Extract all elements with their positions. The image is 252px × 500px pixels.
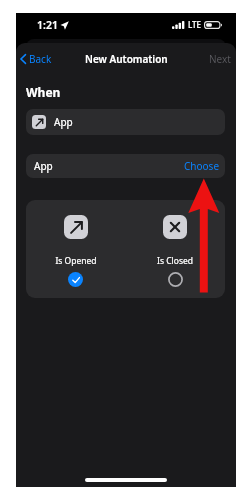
staticText: Is Closed: [157, 255, 193, 267]
button[interactable]: Is Opened: [26, 200, 125, 298]
staticText: When: [26, 84, 61, 100]
staticText: Back: [29, 52, 52, 66]
staticText: Choose: [184, 159, 220, 173]
staticText: 1:21: [37, 18, 58, 32]
button[interactable]: App: [26, 154, 225, 178]
button[interactable]: Next: [204, 48, 236, 70]
staticText: Is Opened: [55, 255, 97, 267]
staticText: New Automation: [85, 52, 168, 66]
staticText: LTE: [188, 19, 202, 30]
button[interactable]: Is Closed: [125, 200, 225, 298]
staticText: App: [34, 159, 53, 173]
staticText: App: [54, 115, 73, 129]
button[interactable]: App: [26, 109, 225, 135]
button[interactable]: Back: [16, 48, 58, 70]
